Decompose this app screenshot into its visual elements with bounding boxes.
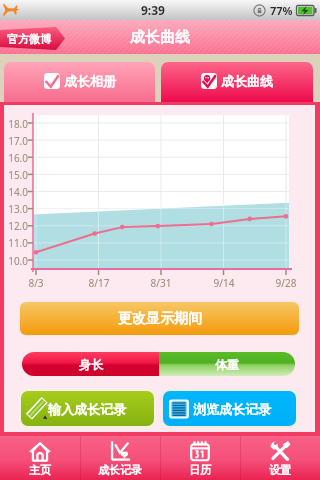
staticText: 8/17 (83, 276, 115, 290)
staticText: 主页 (29, 463, 51, 477)
staticText: 15.0 (6, 168, 28, 182)
staticText: 输入成长记录 (48, 401, 126, 417)
staticText: 18.0 (6, 117, 28, 131)
button[interactable]: 更改显示期间 (20, 302, 299, 335)
staticText: 成长记录 (98, 463, 142, 477)
staticText: 9/14 (208, 276, 240, 290)
staticText: 日历 (189, 463, 211, 477)
staticText: 成长曲线 (221, 73, 273, 89)
staticText: 8/31 (145, 276, 177, 290)
button[interactable]: Growth record (80, 436, 160, 480)
staticText: 17.0 (6, 134, 28, 148)
button[interactable]: Settings (240, 436, 320, 480)
staticText: 身长 (79, 357, 103, 372)
staticText: 13.0 (6, 202, 28, 216)
staticText: 77% (270, 3, 293, 18)
button[interactable]: Home (0, 436, 80, 480)
staticText: 更改显示期间 (118, 310, 202, 328)
staticText: 成长相册 (64, 73, 116, 89)
staticText: 11.0 (6, 236, 28, 250)
staticText: 9/28 (270, 276, 302, 290)
button[interactable]: 身长 (22, 352, 159, 376)
button[interactable]: 官方微博 (0, 27, 65, 50)
staticText: 8/3 (20, 276, 52, 290)
staticText: 14.0 (6, 185, 28, 199)
staticText: 设置 (269, 463, 291, 477)
button[interactable]: Calendar (160, 436, 240, 480)
button[interactable]: 体重 (159, 352, 295, 376)
staticText: 16.0 (6, 151, 28, 165)
staticText: 成长曲线 (130, 28, 190, 47)
button[interactable]: 浏览成长记录 (163, 391, 296, 426)
button[interactable]: 成长相册 (4, 62, 155, 102)
staticText: 官方微博 (7, 32, 51, 46)
button[interactable]: 成长曲线 (161, 62, 313, 102)
staticText: 浏览成长记录 (193, 401, 271, 417)
staticText: 10.0 (6, 254, 28, 268)
staticText: 12.0 (6, 219, 28, 233)
staticText: 体重 (215, 357, 239, 372)
staticText: 9:39 (141, 2, 165, 18)
button[interactable]: 输入成长记录 (21, 391, 154, 426)
